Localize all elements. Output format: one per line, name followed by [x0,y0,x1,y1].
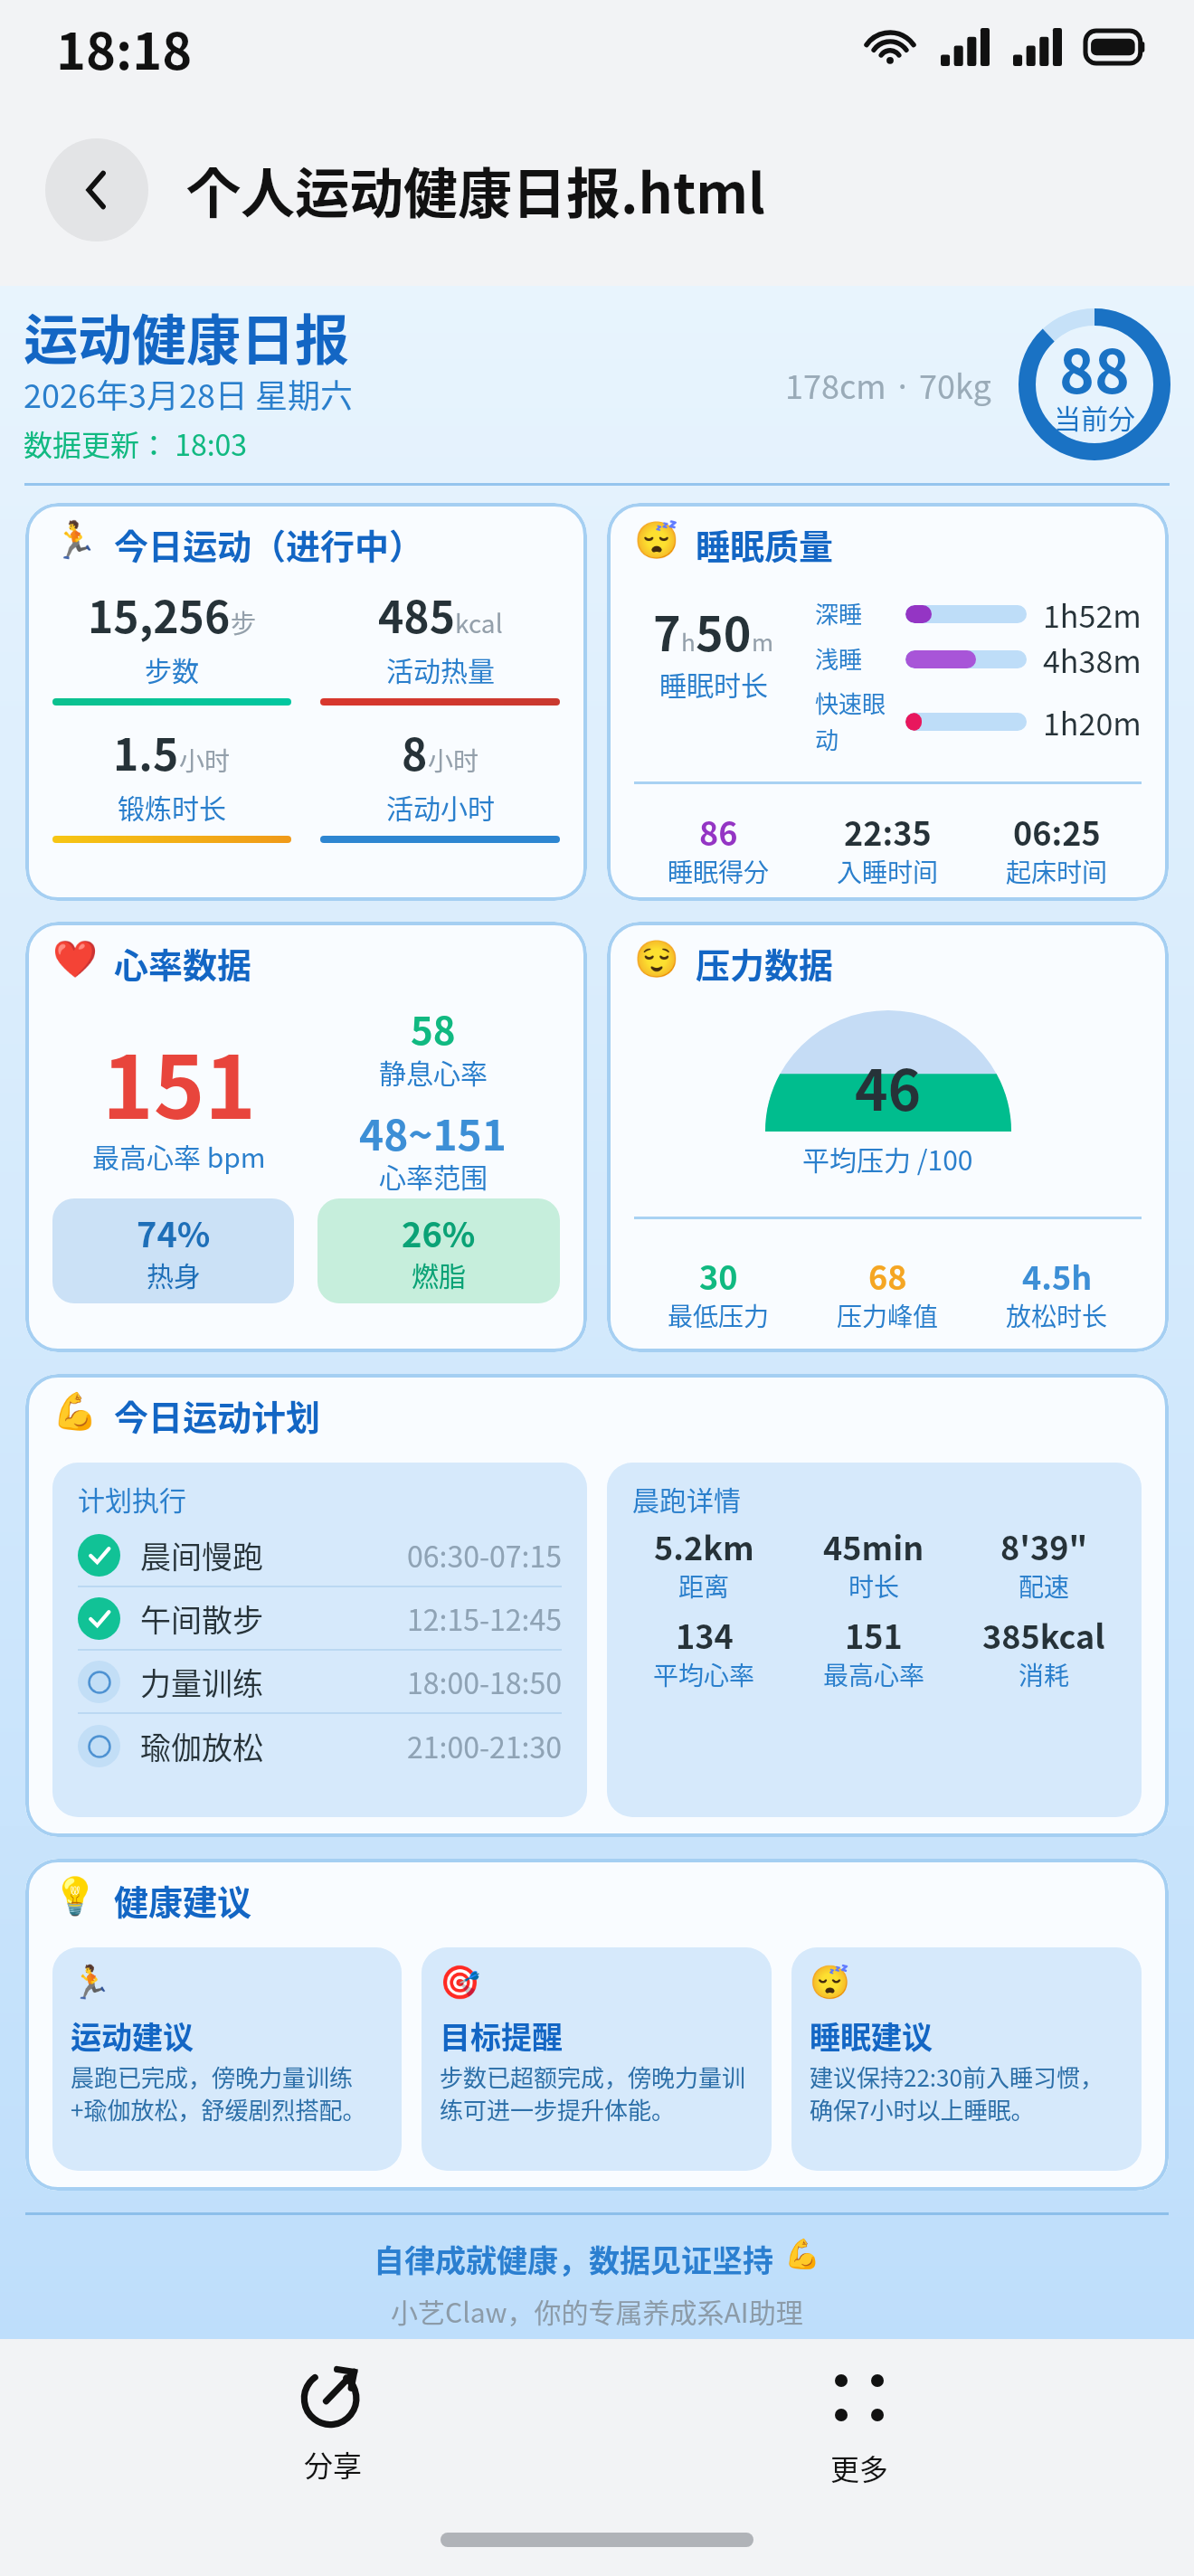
staticText: 26% [402,1207,476,1257]
staticText: 深睡 [815,596,863,630]
staticText: h [681,624,696,658]
staticText: 🎯 [440,1964,480,2002]
staticText: 8'39" [1000,1522,1088,1569]
button[interactable]: 力量训练 [78,1651,562,1714]
staticText: 晨跑详情 [632,1479,741,1518]
staticText: 时长 [848,1567,900,1605]
staticText: 4.5h [1022,1252,1093,1299]
staticText: 最高心率 bpm [92,1136,266,1175]
staticText: 68 [868,1252,907,1299]
staticText: 睡眠质量 [696,519,834,569]
staticText: 心率范围 [379,1156,488,1195]
staticText: 热身 [147,1255,201,1293]
staticText: 2026年3月28日 星期六 [24,370,353,417]
staticText: 健康建议 [114,1875,252,1925]
button[interactable]: Share [300,2361,365,2484]
staticText: 15,256 [88,582,231,646]
staticText: 起床时间 [1006,853,1108,890]
staticText: 目标提醒 [440,2013,563,2058]
staticText: 1h52m [1043,592,1142,637]
staticText: 小时 [428,742,479,779]
staticText: 平均心率 [653,1656,755,1693]
staticText: 46 [855,1046,922,1127]
staticText: 74% [137,1207,211,1257]
staticText: 😴 [810,1964,850,2002]
staticText: 平均压力 /100 [802,1139,973,1178]
staticText: 1h20m [1043,700,1142,744]
staticText: 385kcal [982,1611,1105,1658]
staticText: 21:00-21:30 [407,1725,562,1766]
staticText: 💪 [52,1390,98,1433]
staticText: 45min [823,1522,924,1569]
staticText: 浅睡 [815,641,863,676]
staticText: 48~151 [359,1103,507,1163]
staticText: 计划执行 [78,1479,186,1518]
button[interactable]: 😴 [791,1947,1142,2171]
staticText: 今日运动（进行中） [114,519,424,569]
staticText: 🏃 [71,1964,111,2002]
staticText: 06:25 [1013,808,1101,855]
button[interactable]: ❤️ [25,922,587,1352]
staticText: 50 [696,597,752,665]
staticText: 18:00-18:50 [407,1661,562,1702]
staticText: 30 [699,1252,738,1299]
staticText: 静息心率 [379,1052,488,1091]
button[interactable]: 💡 [25,1859,1169,2191]
staticText: 4h38m [1043,638,1142,682]
staticText: 分享 [304,2443,363,2485]
button[interactable]: 💪 [25,1374,1169,1837]
button[interactable]: 午间散步 [78,1587,562,1651]
staticText: 活动热量 [386,649,495,688]
staticText: 晨间慢跑 [140,1533,263,1577]
staticText: 58 [411,1000,456,1056]
staticText: 8 [402,720,428,783]
staticText: 建议保持22:30前入睡习惯，确保7小时以上睡眠。 [810,2060,1123,2126]
staticText: 睡眠得分 [668,853,770,890]
staticText: 压力峰值 [837,1297,939,1334]
button[interactable]: 74% [52,1198,294,1303]
staticText: 消耗 [1019,1656,1070,1693]
staticText: 最低压力 [668,1297,770,1334]
staticText: 入睡时间 [837,853,939,890]
staticText: 瑜伽放松 [140,1724,263,1768]
button[interactable]: 😌 [607,922,1169,1352]
staticText: 午间散步 [140,1596,263,1641]
staticText: 151 [845,1611,903,1658]
button[interactable]: 26% [317,1198,560,1303]
staticText: 心率数据 [114,938,252,988]
staticText: 134 [676,1611,734,1658]
staticText: 💪 [784,2237,820,2271]
staticText: 12:15-12:45 [407,1597,562,1639]
staticText: 数据更新： 18:03 [24,422,248,464]
staticText: 😌 [634,938,679,980]
staticText: kcal [455,604,503,641]
staticText: 151 [102,1018,256,1144]
staticText: 🏃 [52,519,98,562]
staticText: 5.2km [654,1522,754,1569]
staticText: 距离 [678,1567,730,1605]
button[interactable]: 🎯 [422,1947,772,2171]
staticText: 小艺Claw，你的专属养成系AI助理 [391,2291,803,2330]
button[interactable]: 😴 [607,503,1169,901]
staticText: 运动建议 [71,2013,194,2058]
button[interactable]: 🏃 [25,503,587,901]
staticText: 当前分 [1054,397,1135,436]
staticText: 个人运动健康日报.html [186,150,765,229]
staticText: 22:35 [844,808,932,855]
staticText: 步 [231,604,257,641]
button[interactable]: More options [825,2361,894,2487]
button[interactable]: 🏃 [52,1947,402,2171]
staticText: 力量训练 [140,1660,263,1704]
staticText: 最高心率 [823,1656,925,1693]
staticText: 动 [815,722,839,756]
button[interactable]: 瑜伽放松 [78,1714,562,1777]
staticText: 运动健康日报 [24,297,349,375]
staticText: 步数 [145,649,199,688]
staticText: 7 [653,597,681,665]
staticText: m [752,624,774,658]
staticText: 放松时长 [1006,1297,1108,1334]
button[interactable]: Back [45,138,148,241]
staticText: 💡 [52,1875,98,1918]
button[interactable]: 晨间慢跑 [78,1524,562,1587]
staticText: 自律成就健康，数据见证坚持 [374,2237,773,2281]
